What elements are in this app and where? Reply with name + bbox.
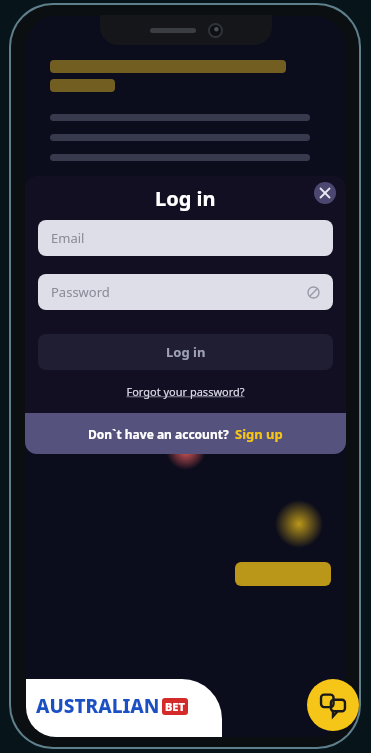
button[interactable]: Open chat [307,679,359,731]
staticText: Sign up [235,425,283,443]
button[interactable]: Close [314,182,336,204]
button[interactable]: Log in [38,334,333,370]
staticText: Log in [155,185,216,212]
staticText: Password [51,283,110,301]
staticText: BET [165,699,185,714]
staticText: Don`t have an account? [88,426,229,442]
button[interactable]: Password [38,274,333,310]
button[interactable]: Don`t have an account? [25,413,346,454]
staticText: Forgot your password? [126,384,245,399]
button[interactable]: Email [38,220,333,256]
button[interactable]: Forgot your password? [25,384,346,399]
button[interactable]: Show password [303,282,323,302]
staticText: Log in [166,343,206,361]
button[interactable]: Australian.bet home [26,679,222,737]
staticText: AUSTRALIAN [36,693,160,719]
staticText: Email [51,229,85,247]
